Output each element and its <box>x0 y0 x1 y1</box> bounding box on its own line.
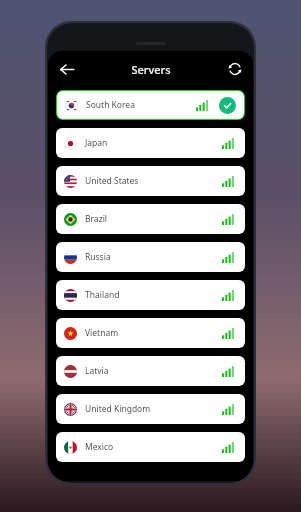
button[interactable]: Refresh <box>222 56 248 82</box>
button[interactable]: Latvia <box>56 356 245 386</box>
button[interactable]: Thailand <box>56 280 245 310</box>
staticText: Mexico <box>85 441 114 453</box>
button[interactable]: Mexico <box>56 432 245 462</box>
button[interactable]: Japan <box>56 128 245 158</box>
button[interactable]: Back <box>53 55 81 83</box>
staticText: Russia <box>85 251 111 263</box>
staticText: Brazil <box>85 213 108 225</box>
button[interactable]: South Korea <box>57 91 244 119</box>
staticText: Latvia <box>85 365 109 377</box>
staticText: South Korea <box>86 99 135 111</box>
other: Selected <box>219 97 236 114</box>
staticText: United States <box>85 175 139 187</box>
staticText: Japan <box>85 137 108 149</box>
button[interactable]: Russia <box>56 242 245 272</box>
button[interactable]: Brazil <box>56 204 245 234</box>
staticText: United Kingdom <box>85 403 151 415</box>
staticText: Vietnam <box>85 327 119 339</box>
button[interactable]: United States <box>56 166 245 196</box>
staticText: Thailand <box>85 289 120 301</box>
button[interactable]: Vietnam <box>56 318 245 348</box>
button[interactable]: United Kingdom <box>56 394 245 424</box>
staticText: Servers <box>131 62 171 77</box>
